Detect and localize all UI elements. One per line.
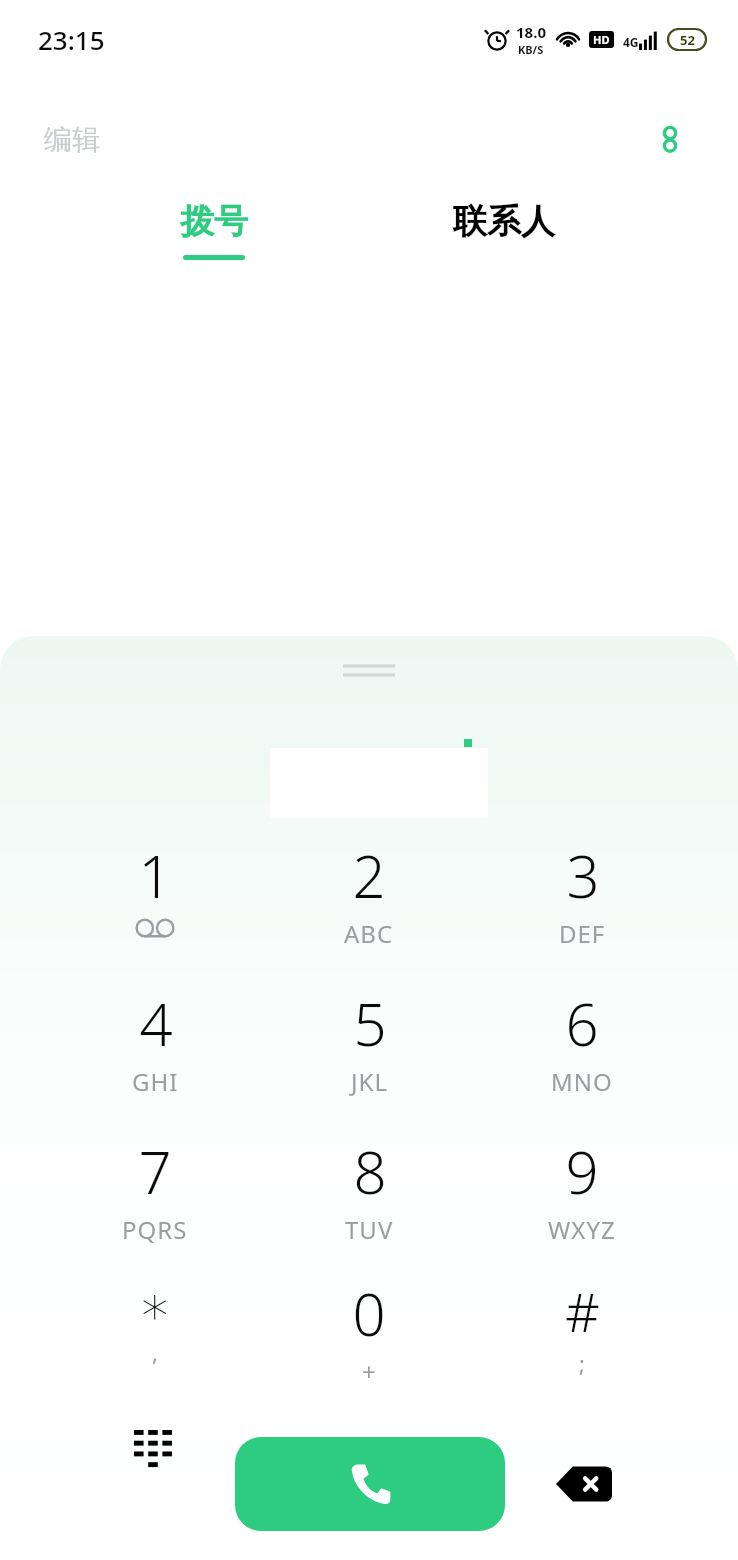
- button[interactable]: 4: [77, 984, 233, 1116]
- staticText: 0: [352, 1274, 386, 1353]
- button[interactable]: 8: [291, 1132, 447, 1264]
- staticText: 18.0: [516, 22, 546, 42]
- staticText: #: [565, 1274, 600, 1348]
- button[interactable]: 9: [504, 1132, 660, 1264]
- button[interactable]: ∗: [77, 1274, 233, 1406]
- staticText: 4G: [623, 34, 639, 50]
- button[interactable]: 7: [77, 1132, 233, 1264]
- staticText: 52: [680, 31, 695, 49]
- button[interactable]: 3: [504, 836, 660, 968]
- button[interactable]: 联系人: [443, 196, 565, 247]
- button[interactable]: Delete: [540, 1440, 628, 1528]
- button[interactable]: Keypad: [110, 1406, 198, 1494]
- button[interactable]: 6: [504, 984, 660, 1116]
- staticText: 4: [139, 984, 173, 1063]
- staticText: ;: [579, 1348, 586, 1378]
- button[interactable]: 5: [291, 984, 447, 1116]
- button[interactable]: More options: [648, 117, 692, 161]
- button[interactable]: 1: [77, 836, 233, 968]
- button[interactable]: 2: [291, 836, 447, 968]
- staticText: 联系人: [453, 200, 555, 243]
- staticText: WXYZ: [548, 1213, 616, 1246]
- staticText: HD: [593, 32, 610, 47]
- button[interactable]: 编辑: [44, 122, 100, 157]
- staticText: 1: [138, 836, 172, 915]
- button[interactable]: Call: [235, 1437, 505, 1531]
- button[interactable]: 0: [291, 1274, 447, 1406]
- staticText: DEF: [559, 917, 606, 950]
- staticText: 拨号: [180, 200, 248, 243]
- staticText: ∗: [138, 1274, 172, 1337]
- staticText: 3: [566, 836, 600, 915]
- staticText: 5: [353, 984, 387, 1063]
- staticText: JKL: [351, 1065, 388, 1098]
- staticText: +: [362, 1355, 377, 1388]
- staticText: KB/S: [518, 42, 544, 57]
- button[interactable]: 拨号: [170, 196, 258, 264]
- staticText: 2: [352, 836, 386, 915]
- staticText: 6: [565, 984, 599, 1063]
- button[interactable]: #: [504, 1274, 660, 1406]
- staticText: 8: [353, 1132, 387, 1211]
- staticText: GHI: [132, 1065, 179, 1098]
- staticText: ,: [152, 1337, 159, 1367]
- staticText: 7: [138, 1132, 172, 1211]
- staticText: 9: [565, 1132, 599, 1211]
- staticText: MNO: [551, 1065, 613, 1098]
- staticText: PQRS: [122, 1213, 188, 1246]
- staticText: ABC: [344, 917, 394, 950]
- staticText: TUV: [345, 1213, 394, 1246]
- staticText: 23:15: [38, 22, 105, 57]
